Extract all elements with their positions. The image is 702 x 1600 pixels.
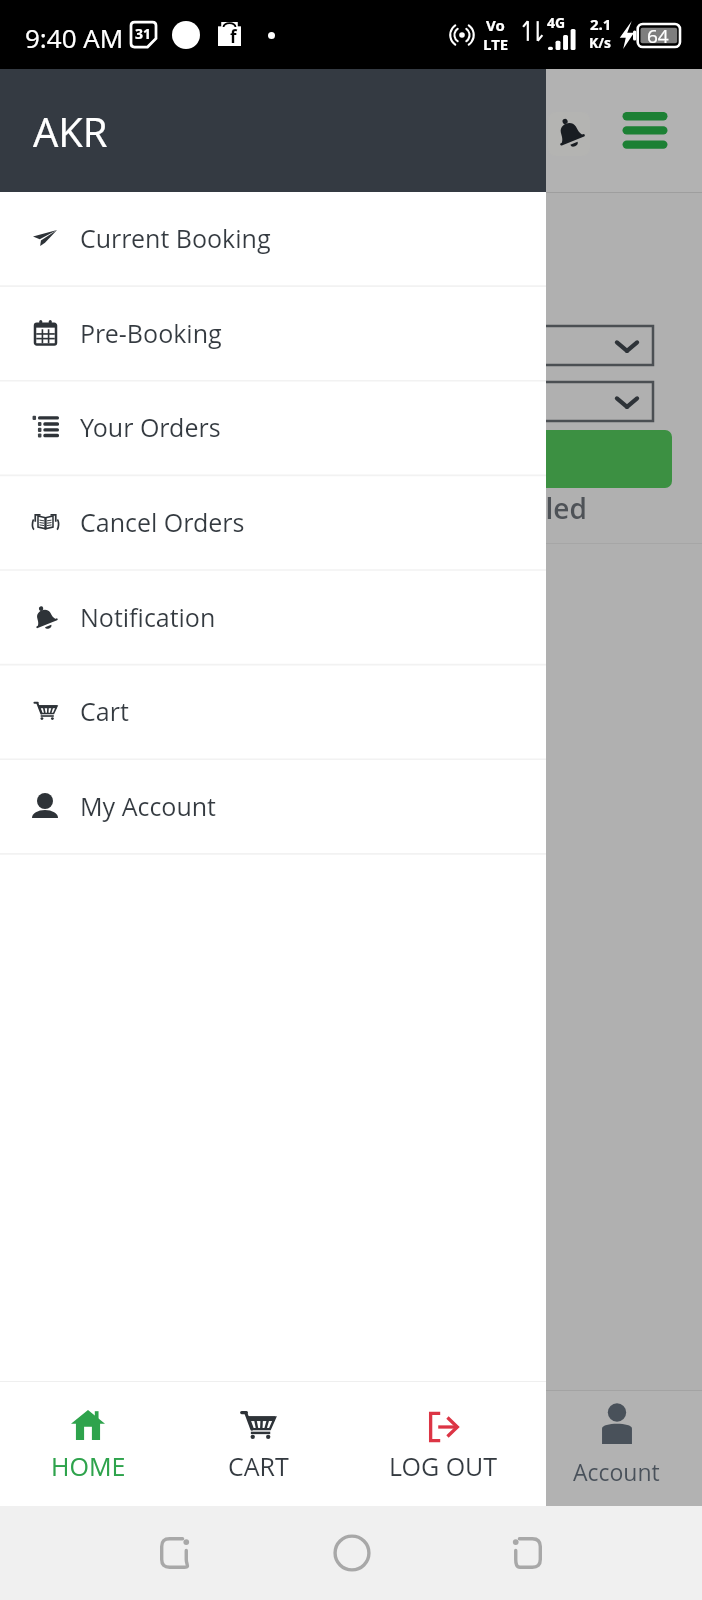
staticText: 31 [135,24,151,43]
staticText: Account [573,1456,660,1487]
staticText: CART [228,1449,289,1483]
button[interactable]: Cart [0,665,546,760]
staticText: f [230,25,237,48]
staticText: HOME [51,1449,126,1483]
staticText: Your Orders [80,410,221,444]
staticText: 4G [547,13,566,32]
button[interactable]: Cancel Orders [0,476,546,571]
button[interactable]: Notifications [546,104,594,160]
button[interactable] [390,326,653,365]
staticText: 64 [647,23,669,46]
staticText: K/s [589,33,612,52]
button[interactable]: Current Booking [0,192,546,287]
staticText: Cancelled [456,489,587,527]
staticText: Notification [80,600,216,634]
staticText: 9:40 AM [25,20,124,55]
staticText: LOG OUT [389,1449,498,1483]
staticText: Cart [80,694,129,728]
button[interactable]: Your Orders [0,381,546,476]
staticText: My Account [80,789,216,823]
button[interactable]: Pre-Booking [0,287,546,382]
staticText: AKR [33,104,108,158]
button[interactable]: Home [322,1523,382,1583]
button[interactable]: Back [493,1523,553,1583]
button[interactable]: LOG OUT [359,1381,527,1506]
button[interactable]: Recent apps [148,1523,208,1583]
button[interactable]: CART [174,1381,342,1506]
staticText: Vo [486,15,505,35]
button[interactable]: My Account [0,760,546,855]
button[interactable]: Open navigation menu [604,100,686,162]
staticText: LTE [483,34,509,54]
staticText: 2.1 [590,14,612,34]
button[interactable]: Notification [0,571,546,666]
button[interactable]: HOME [4,1381,172,1506]
button[interactable] [400,430,672,488]
staticText: Current Booking [80,221,271,255]
staticText: Cancel Orders [80,505,245,539]
button[interactable] [390,382,653,421]
staticText: Pre-Booking [80,316,222,350]
button[interactable]: Account [530,1390,702,1506]
